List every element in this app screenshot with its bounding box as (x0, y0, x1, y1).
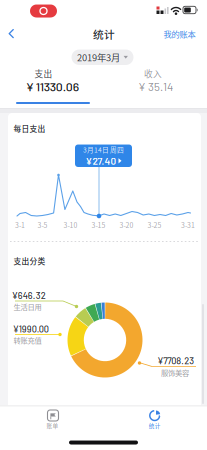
button[interactable]: 返回 (4, 26, 20, 42)
staticText: ¥ 35.14 (138, 80, 173, 93)
staticText: ¥ 11330.06 (26, 79, 79, 94)
staticText: 统计 (93, 26, 115, 42)
staticText: 3-5 (37, 220, 47, 230)
staticText: ¥27.40 (85, 155, 116, 167)
staticText: 2019年3月 (77, 50, 120, 64)
staticText: 生活日用 (13, 301, 41, 312)
button[interactable]: 账单 (30, 407, 76, 433)
staticText: 3-25 (147, 220, 161, 230)
staticText: 3-10 (63, 220, 77, 230)
button[interactable]: 收入 (103, 64, 207, 106)
staticText: 3-15 (91, 220, 105, 230)
staticText: 收入 (144, 67, 162, 80)
button[interactable]: 我的账本 (0, 0, 207, 450)
staticText: 我的账本 (163, 28, 195, 40)
staticText: 3-1 (15, 220, 25, 230)
staticText: 支出 (34, 67, 52, 80)
staticText: 账单 (46, 421, 58, 429)
staticText: ¥7708.23 (157, 355, 194, 366)
staticText: ¥1990.00 (13, 323, 49, 334)
staticText: 转账充值 (13, 335, 41, 345)
staticText: ¥646.32 (12, 290, 46, 301)
button[interactable]: 支出 (0, 64, 103, 106)
staticText: 支出分类 (13, 255, 45, 267)
staticText: 每日支出 (13, 123, 45, 134)
staticText: 服饰美容 (161, 367, 189, 378)
staticText: 3月14日 周四 (83, 145, 124, 154)
staticText: 3-20 (119, 220, 133, 230)
button[interactable]: 统计 (132, 407, 178, 433)
staticText: 统计 (149, 421, 161, 429)
button[interactable]: 2019年3月 (71, 49, 133, 65)
staticText: 3-31 (181, 220, 195, 230)
